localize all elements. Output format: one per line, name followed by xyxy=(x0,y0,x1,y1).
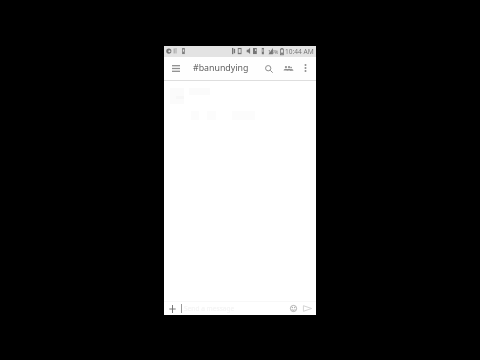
button[interactable]: Send a message xyxy=(181,302,287,315)
staticText: Send a message xyxy=(184,304,235,313)
button[interactable]: Add attachment xyxy=(167,303,178,314)
button[interactable]: More options xyxy=(297,60,313,76)
button[interactable]: Insert emoji xyxy=(287,302,300,315)
button[interactable]: Open navigation drawer xyxy=(168,60,184,76)
button[interactable]: Search xyxy=(260,60,277,77)
staticText: 13% xyxy=(268,48,279,55)
button[interactable]: Send xyxy=(301,302,314,315)
button[interactable]: Add people xyxy=(279,60,296,77)
staticText: #banundying xyxy=(193,62,249,74)
staticText: 10:44 AM xyxy=(285,47,314,56)
